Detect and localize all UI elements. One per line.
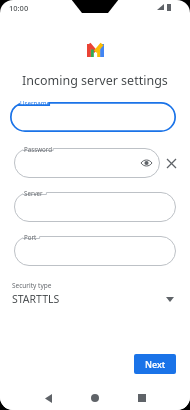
button[interactable]: Back [38, 388, 58, 408]
button[interactable]: Password [14, 148, 160, 178]
button[interactable]: Show password [139, 156, 153, 170]
button[interactable]: Recent apps [132, 388, 152, 408]
staticText: Next [145, 358, 166, 370]
button[interactable]: Next [134, 354, 176, 374]
staticText: Server [24, 189, 43, 197]
staticText: Password [24, 145, 52, 153]
button[interactable]: Home [85, 388, 105, 408]
button[interactable]: Security type [12, 281, 178, 309]
button[interactable]: Username [10, 102, 176, 132]
staticText: Username [20, 99, 51, 107]
button[interactable]: Port [14, 236, 176, 266]
staticText: Security type [12, 281, 52, 290]
staticText: Incoming server settings [22, 72, 168, 89]
button[interactable]: Clear password [163, 155, 179, 171]
staticText: Port [24, 233, 37, 241]
staticText: STARTTLS [12, 292, 60, 306]
staticText: 10:00 [9, 3, 29, 13]
button[interactable]: Server [14, 192, 176, 222]
